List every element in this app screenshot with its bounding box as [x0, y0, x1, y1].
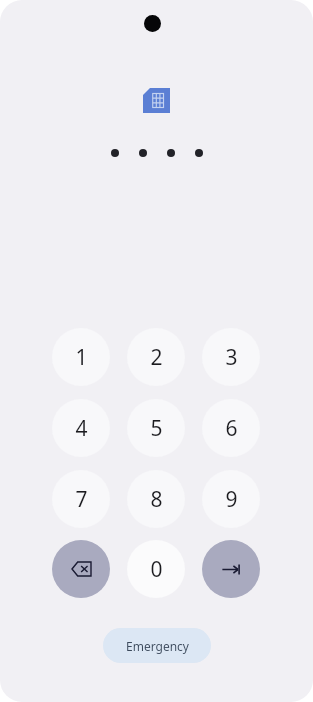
button[interactable]: Backspace — [52, 540, 110, 598]
staticText: 6 — [225, 414, 238, 443]
staticText: 3 — [225, 343, 238, 372]
button[interactable]: 0 — [127, 540, 185, 598]
button[interactable]: 3 — [202, 328, 260, 386]
staticText: 0 — [150, 555, 163, 584]
button[interactable]: Enter — [202, 540, 260, 598]
staticText: 9 — [225, 485, 238, 514]
button[interactable]: Emergency — [103, 628, 211, 663]
button[interactable]: 9 — [202, 470, 260, 528]
staticText: 2 — [150, 343, 163, 372]
button[interactable]: 7 — [52, 470, 110, 528]
button[interactable]: 6 — [202, 399, 260, 457]
staticText: 7 — [75, 485, 88, 514]
staticText: 1 — [75, 343, 88, 372]
staticText: 8 — [150, 485, 163, 514]
button[interactable]: 8 — [127, 470, 185, 528]
staticText: 5 — [150, 414, 163, 443]
button[interactable]: 2 — [127, 328, 185, 386]
staticText: Emergency — [126, 638, 189, 654]
button[interactable]: 4 — [52, 399, 110, 457]
button[interactable]: 1 — [52, 328, 110, 386]
button[interactable]: 5 — [127, 399, 185, 457]
staticText: 4 — [75, 414, 88, 443]
